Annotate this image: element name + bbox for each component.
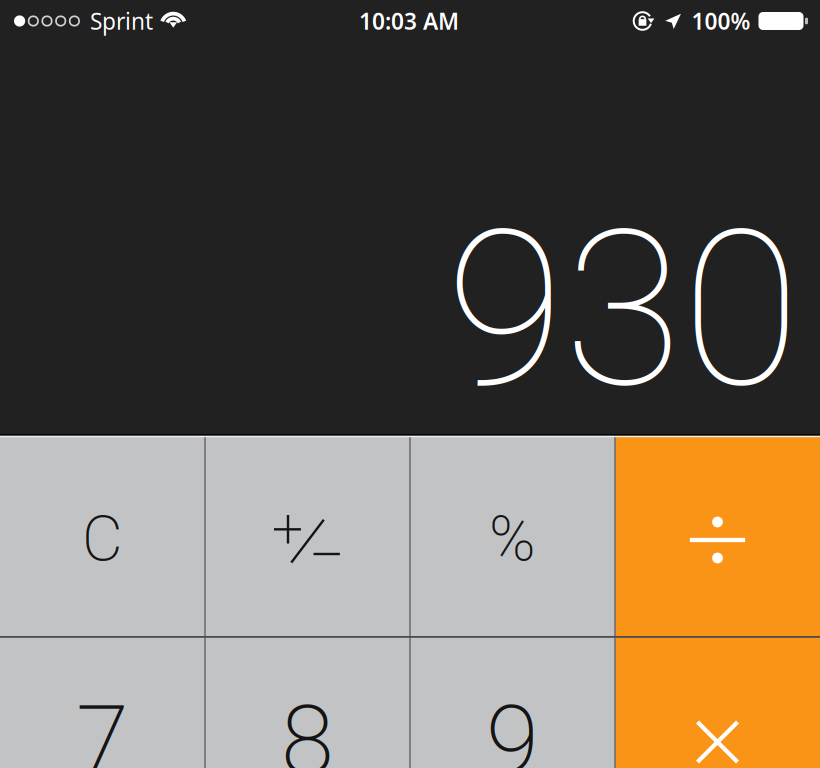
button[interactable]: 7 (0, 636, 205, 768)
staticText: 8 (281, 685, 334, 768)
button[interactable]: 9 (410, 636, 615, 768)
staticText: C (82, 502, 123, 576)
button[interactable]: Divide (615, 434, 820, 636)
staticText: 10:03 AM (359, 6, 459, 36)
button[interactable]: Plus minus (205, 434, 410, 636)
staticText: % (489, 502, 536, 576)
button[interactable]: Percent (410, 434, 615, 636)
staticText: 930 (446, 183, 800, 436)
staticText: Sprint (90, 6, 153, 36)
staticText: 100% (691, 6, 750, 36)
button[interactable]: Multiply (615, 636, 820, 768)
button[interactable]: Clear (0, 434, 205, 636)
staticText: 7 (76, 685, 129, 768)
staticText: 9 (486, 685, 539, 768)
button[interactable]: 8 (205, 636, 410, 768)
